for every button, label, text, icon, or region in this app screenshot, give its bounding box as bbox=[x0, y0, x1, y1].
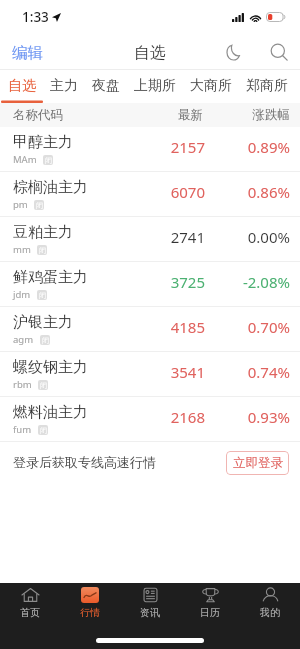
staticText: pm bbox=[13, 198, 28, 211]
staticText: -2.08% bbox=[236, 272, 290, 292]
button[interactable]: 夜盘 bbox=[92, 70, 120, 103]
staticText: 4185 bbox=[146, 317, 205, 337]
staticText: 大商所 bbox=[190, 77, 232, 95]
button[interactable]: 我的 bbox=[240, 587, 300, 625]
button[interactable]: 郑商所 bbox=[246, 70, 288, 103]
staticText: 编辑 bbox=[12, 43, 43, 62]
staticText: 0.74% bbox=[236, 362, 290, 382]
button[interactable]: 沪银主力 bbox=[0, 307, 300, 351]
staticText: 2741 bbox=[146, 227, 205, 247]
staticText: 首页 bbox=[20, 606, 40, 619]
staticText: rbm bbox=[13, 378, 32, 391]
staticText: 豆粕主力 bbox=[13, 223, 73, 242]
staticText: mm bbox=[13, 243, 31, 256]
staticText: 自选 bbox=[134, 43, 166, 63]
staticText: 6070 bbox=[146, 182, 205, 202]
staticText: 沪银主力 bbox=[13, 313, 73, 332]
staticText: 3541 bbox=[146, 362, 205, 382]
button[interactable]: 主力 bbox=[50, 70, 78, 103]
button[interactable]: Search bbox=[264, 37, 300, 68]
staticText: 自选 bbox=[8, 77, 36, 95]
button[interactable]: 日历 bbox=[180, 587, 240, 625]
button[interactable]: 编辑 bbox=[0, 36, 53, 69]
button[interactable]: 上期所 bbox=[134, 70, 176, 103]
staticText: 2168 bbox=[146, 407, 205, 427]
staticText: 3725 bbox=[146, 272, 205, 292]
staticText: 资讯 bbox=[140, 606, 160, 619]
staticText: fum bbox=[13, 423, 32, 436]
staticText: 燃料油主力 bbox=[13, 403, 88, 422]
button[interactable]: 螺纹钢主力 bbox=[0, 352, 300, 396]
staticText: 日历 bbox=[200, 606, 220, 619]
button[interactable]: 资讯 bbox=[120, 587, 180, 625]
button[interactable]: 甲醇主力 bbox=[0, 127, 300, 171]
button[interactable]: 立即登录 bbox=[226, 451, 289, 475]
staticText: 鲜鸡蛋主力 bbox=[13, 268, 88, 287]
staticText: 最新 bbox=[146, 107, 203, 123]
staticText: 甲醇主力 bbox=[13, 133, 73, 152]
button[interactable]: 豆粕主力 bbox=[0, 217, 300, 261]
staticText: 郑商所 bbox=[246, 77, 288, 95]
staticText: 夜盘 bbox=[92, 77, 120, 95]
button[interactable]: 棕榈油主力 bbox=[0, 172, 300, 216]
staticText: 螺纹钢主力 bbox=[13, 358, 88, 377]
staticText: 1:33 bbox=[22, 8, 49, 26]
staticText: agm bbox=[13, 333, 34, 346]
button[interactable]: 自选 bbox=[8, 70, 36, 103]
staticText: 闭 bbox=[36, 201, 43, 210]
staticText: 闭 bbox=[40, 381, 47, 390]
staticText: 0.93% bbox=[236, 407, 290, 427]
staticText: 2157 bbox=[146, 137, 205, 157]
button[interactable]: 鲜鸡蛋主力 bbox=[0, 262, 300, 306]
staticText: 闭 bbox=[42, 336, 49, 345]
button[interactable]: 大商所 bbox=[190, 70, 232, 103]
staticText: 0.86% bbox=[236, 182, 290, 202]
staticText: 闭 bbox=[39, 246, 46, 255]
staticText: 0.00% bbox=[236, 227, 290, 247]
button[interactable]: 燃料油主力 bbox=[0, 397, 300, 441]
staticText: 登录后获取专线高速行情 bbox=[13, 454, 156, 470]
staticText: MAm bbox=[13, 153, 37, 166]
staticText: 立即登录 bbox=[233, 455, 283, 471]
staticText: 0.89% bbox=[236, 137, 290, 157]
button[interactable]: 行情 bbox=[60, 587, 120, 625]
staticText: 行情 bbox=[80, 606, 100, 619]
staticText: 名称代码 bbox=[13, 107, 63, 123]
staticText: 闭 bbox=[45, 156, 52, 165]
staticText: 闭 bbox=[40, 426, 47, 435]
button[interactable]: 首页 bbox=[0, 587, 60, 625]
staticText: 主力 bbox=[50, 77, 78, 95]
button[interactable]: Dark mode bbox=[220, 38, 247, 67]
staticText: 我的 bbox=[260, 606, 280, 619]
staticText: jdm bbox=[13, 288, 31, 301]
staticText: 涨跌幅 bbox=[243, 107, 290, 123]
staticText: 棕榈油主力 bbox=[13, 178, 88, 197]
staticText: 闭 bbox=[39, 291, 46, 300]
staticText: 上期所 bbox=[134, 77, 176, 95]
staticText: 0.70% bbox=[236, 317, 290, 337]
